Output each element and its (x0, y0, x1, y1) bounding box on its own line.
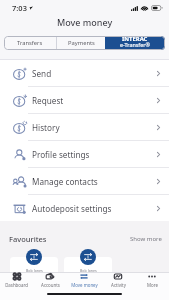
staticText: History (32, 122, 60, 133)
button[interactable]: INTERAC (105, 36, 165, 50)
button[interactable]: More (135, 273, 169, 288)
staticText: Payments (68, 39, 95, 47)
button[interactable]: Profile settings (0, 141, 169, 167)
button[interactable]: History (0, 114, 169, 140)
staticText: Transfers (17, 39, 43, 47)
staticText: Bob Jones (80, 268, 97, 273)
button[interactable]: Transfers (4, 36, 56, 50)
button[interactable]: Request (0, 87, 169, 113)
button[interactable]: Move money (67, 273, 101, 288)
button[interactable]: Dashboard (0, 273, 33, 288)
button[interactable]: Bob Jones (10, 257, 58, 287)
staticText: More (147, 282, 158, 288)
button[interactable]: Favourite contact (80, 249, 96, 265)
staticText: 7:03 (12, 3, 27, 13)
button[interactable]: Accounts (33, 273, 67, 288)
staticText: Bob Jones (26, 268, 43, 273)
staticText: Move money (57, 16, 113, 28)
button[interactable]: Payments (57, 36, 105, 50)
staticText: Activity (111, 282, 126, 288)
staticText: Send (32, 68, 52, 79)
staticText: Dashboard (5, 282, 28, 288)
staticText: Accounts (41, 282, 60, 288)
staticText: Show more (130, 235, 162, 243)
button[interactable]: Activity (101, 273, 135, 288)
button[interactable]: Send (0, 60, 169, 86)
staticText: Autodeposit settings (32, 203, 112, 214)
staticText: Move money (71, 282, 98, 288)
button[interactable]: Autodeposit settings (0, 195, 169, 221)
button[interactable]: Manage contacts (0, 168, 169, 194)
staticText: Profile settings (32, 149, 90, 160)
staticText: Manage contacts (32, 176, 98, 187)
button[interactable]: Bob Jones (64, 257, 112, 287)
staticText: e-Transfer® (120, 41, 150, 48)
button[interactable]: Favourite contact (26, 249, 42, 265)
staticText: Request (32, 95, 64, 106)
staticText: Favourites (9, 234, 47, 244)
button[interactable]: Show more (130, 235, 162, 243)
staticText: INTERAC (122, 36, 148, 43)
